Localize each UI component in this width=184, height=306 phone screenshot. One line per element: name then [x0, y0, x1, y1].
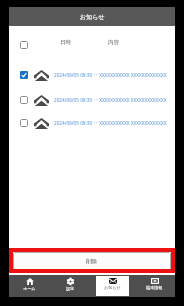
staticText: 内容 — [108, 39, 120, 46]
button[interactable]: 削除 — [13, 252, 171, 270]
button[interactable]: ホーム — [9, 275, 50, 297]
staticText: お知らせ — [80, 13, 105, 21]
staticText: 2024/06/05 09:30 ･･ XXXXXXXXXXX XXXXXXXX… — [54, 97, 167, 103]
staticText: 削除 — [86, 258, 98, 265]
staticText: お知らせ — [104, 285, 121, 290]
button[interactable]: お知らせ — [91, 275, 133, 297]
staticText: 設定 — [66, 286, 75, 291]
staticText: ホーム — [23, 286, 36, 291]
button[interactable]: 2024/06/05 09:30 ･･ XXXXXXXXXXX XXXXXXXX… — [9, 69, 175, 81]
staticText: 2024/06/05 09:30 ･･ XXXXXXXXXXX XXXXXXXX… — [54, 120, 167, 126]
staticText: 端末情報 — [146, 285, 163, 290]
staticText: 日時 — [60, 39, 72, 46]
button[interactable]: 端末情報 — [133, 275, 175, 297]
button[interactable]: 2024/06/05 09:30 ･･ XXXXXXXXXXX XXXXXXXX… — [9, 94, 175, 106]
button[interactable]: 2024/06/05 09:30 ･･ XXXXXXXXXXX XXXXXXXX… — [9, 117, 175, 129]
button[interactable]: 設定 — [50, 275, 91, 297]
staticText: 2024/06/05 09:30 ･･ XXXXXXXXXXX XXXXXXXX… — [54, 72, 167, 78]
